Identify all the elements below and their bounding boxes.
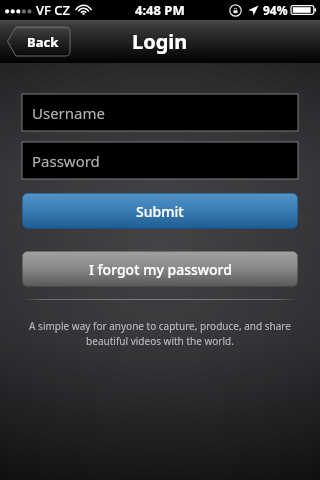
staticText: Password bbox=[32, 151, 100, 171]
staticText: A simple way for anyone to capture, prod… bbox=[22, 319, 298, 348]
button[interactable]: Back bbox=[7, 27, 70, 56]
staticText: Back bbox=[27, 33, 59, 51]
staticText: 4:48 PM bbox=[135, 1, 185, 19]
button[interactable]: Username bbox=[22, 94, 298, 131]
staticText: Login bbox=[132, 28, 188, 55]
button[interactable]: Password bbox=[22, 142, 298, 179]
staticText: I forgot my password bbox=[89, 260, 232, 279]
staticText: Submit bbox=[136, 202, 184, 221]
staticText: VF CZ bbox=[36, 1, 70, 19]
staticText: 94% bbox=[263, 2, 288, 18]
staticText: Username bbox=[32, 103, 105, 123]
button[interactable]: I forgot my password bbox=[22, 251, 298, 287]
button[interactable]: Submit bbox=[22, 193, 298, 229]
